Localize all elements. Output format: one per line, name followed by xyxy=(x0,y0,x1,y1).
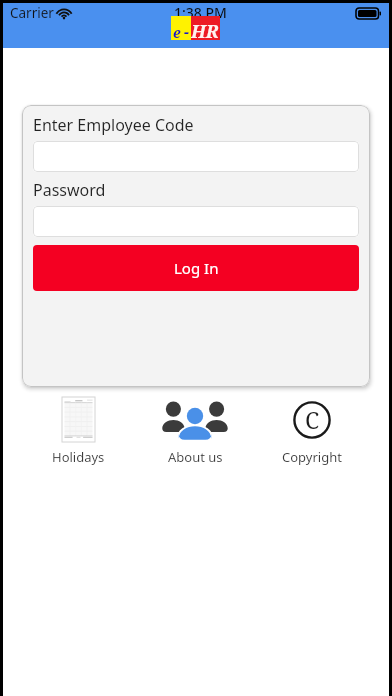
staticText: 1:38 PM xyxy=(174,3,227,22)
other: Copyright xyxy=(291,399,333,441)
staticText: e xyxy=(173,23,181,42)
staticText: About us xyxy=(168,448,223,466)
staticText: C xyxy=(305,404,320,435)
staticText: Password xyxy=(33,179,106,201)
staticText: Holidays xyxy=(52,448,105,466)
button[interactable]: Copyright xyxy=(268,396,356,466)
staticText: Log In xyxy=(174,258,219,278)
button[interactable] xyxy=(33,206,359,237)
staticText: Carrier xyxy=(10,4,54,22)
button[interactable]: Log In xyxy=(33,245,359,291)
staticText: - xyxy=(184,21,189,43)
staticText: HR xyxy=(191,19,219,43)
button[interactable]: Holidays xyxy=(34,396,122,466)
button[interactable] xyxy=(33,141,359,172)
button[interactable]: About us xyxy=(151,396,239,466)
staticText: Copyright xyxy=(282,448,342,466)
staticText: Enter Employee Code xyxy=(33,114,194,136)
other: Holidays xyxy=(62,397,95,442)
other: About us xyxy=(159,399,231,441)
